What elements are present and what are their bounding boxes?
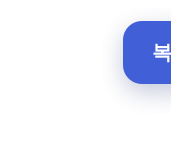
staticText: 복사 [152, 40, 171, 65]
button[interactable]: 복사 [123, 21, 171, 84]
